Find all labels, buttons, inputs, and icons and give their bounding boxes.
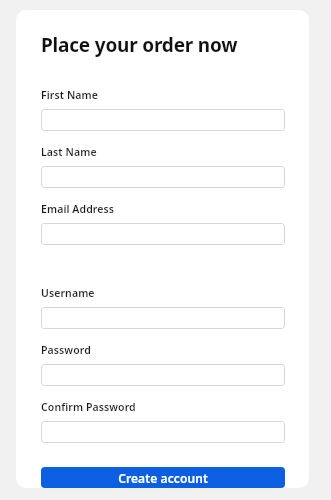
staticText: Create account: [118, 470, 208, 486]
button[interactable]: Create account: [41, 467, 285, 488]
button[interactable]: [41, 421, 285, 443]
staticText: Username: [41, 286, 95, 300]
staticText: Place your order now: [41, 32, 238, 58]
button[interactable]: [41, 223, 285, 245]
staticText: Last Name: [41, 145, 97, 159]
button[interactable]: [41, 307, 285, 329]
button[interactable]: [41, 364, 285, 386]
staticText: First Name: [41, 88, 99, 102]
staticText: Email Address: [41, 202, 115, 216]
staticText: Password: [41, 343, 91, 357]
button[interactable]: [41, 166, 285, 188]
staticText: Confirm Password: [41, 400, 136, 414]
button[interactable]: [41, 109, 285, 131]
